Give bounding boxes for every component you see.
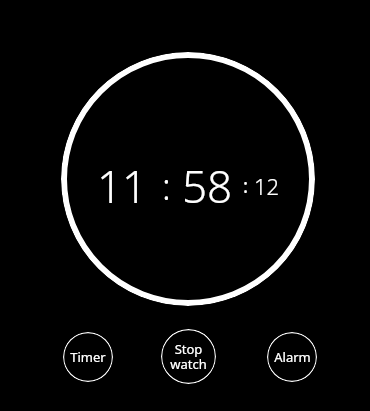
button[interactable]: Clock dial: [61, 52, 315, 306]
button[interactable]: Alarm: [267, 332, 317, 382]
staticText: Stop watch: [170, 340, 207, 373]
staticText: Alarm: [274, 348, 311, 366]
button[interactable]: Stop watch: [161, 329, 216, 384]
staticText: 11: [97, 156, 148, 216]
staticText: :: [162, 162, 171, 211]
staticText: :: [243, 173, 249, 199]
staticText: 58: [182, 156, 233, 216]
staticText: 12: [254, 171, 280, 201]
staticText: Timer: [70, 348, 106, 366]
button[interactable]: Timer: [63, 332, 113, 382]
